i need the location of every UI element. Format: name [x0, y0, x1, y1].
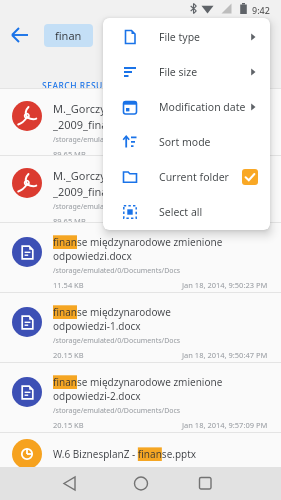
- staticText: /storage/emulated/0/Documents/Docs: [53, 336, 181, 346]
- button[interactable]: M._Gorczynska_fin _2009_finanse.pdf: [0, 88, 281, 155]
- staticText: 20.15 KB: [53, 350, 84, 360]
- staticText: File type: [159, 30, 201, 44]
- button[interactable]: [191, 476, 219, 491]
- staticText: finan: [55, 28, 82, 43]
- button[interactable]: Select all: [103, 194, 270, 229]
- staticText: 9:42: [252, 4, 270, 16]
- staticText: 20.15 KB: [53, 420, 84, 430]
- staticText: Modification date: [159, 100, 246, 114]
- button[interactable]: W.6 BiznesplanZ - finanse.pptx: [0, 432, 281, 467]
- button[interactable]: File type: [103, 19, 270, 54]
- staticText: finanse międzynarodowe zmienione odpowie…: [53, 235, 223, 263]
- button[interactable]: Modification date: [103, 89, 270, 124]
- button[interactable]: M._Gorczynska_fin _2009_finanse.pdf: [0, 155, 281, 222]
- button[interactable]: finanse międzynarodowe odpowiedzi-1.docx: [0, 292, 281, 362]
- staticText: finanse międzynarodowe odpowiedzi-1.docx: [53, 305, 171, 333]
- staticText: 89.65 MB: [53, 149, 86, 155]
- button[interactable]: [8, 23, 32, 47]
- staticText: /storage/emulated/0/Documents: [53, 202, 162, 212]
- button[interactable]: File size: [103, 54, 270, 89]
- staticText: M._Gorczynska_fin _2009_finanse.pdf: [53, 101, 149, 132]
- staticText: Jan 18, 2014, 9:50:47 PM: [182, 350, 268, 360]
- button[interactable]: Current folder: [103, 159, 270, 194]
- staticText: /storage/emulated/0/Documents/Docs: [53, 266, 181, 276]
- staticText: W.6 BiznesplanZ - finanse.pptx: [53, 447, 197, 461]
- staticText: /storage/emulated/0/Documents: [53, 135, 162, 145]
- staticText: finanse międzynarodowe zmienione odpowie…: [53, 375, 223, 403]
- staticText: Jan 18, 2014, 9:57:09 PM: [182, 420, 268, 430]
- staticText: 11.54 KB: [53, 280, 84, 290]
- button[interactable]: [127, 476, 155, 491]
- staticText: 89.65 MB: [53, 216, 86, 222]
- staticText: /storage/emulated/0/Documents/Docs: [53, 406, 181, 416]
- staticText: Sort mode: [159, 135, 211, 149]
- button[interactable]: finanse międzynarodowe zmienione odpowie…: [0, 222, 281, 292]
- button[interactable]: finanse międzynarodowe zmienione odpowie…: [0, 362, 281, 432]
- staticText: SEARCH RESULTS: [42, 80, 119, 92]
- staticText: Jan 18, 2014, 9:50:23 PM: [182, 280, 268, 290]
- staticText: File size: [159, 65, 198, 79]
- staticText: Current folder: [159, 170, 229, 184]
- button[interactable]: [56, 476, 84, 491]
- button[interactable]: Sort mode: [103, 124, 270, 159]
- staticText: Select all: [159, 205, 203, 219]
- staticText: M._Gorczynska_fin _2009_finanse.pdf: [53, 168, 149, 199]
